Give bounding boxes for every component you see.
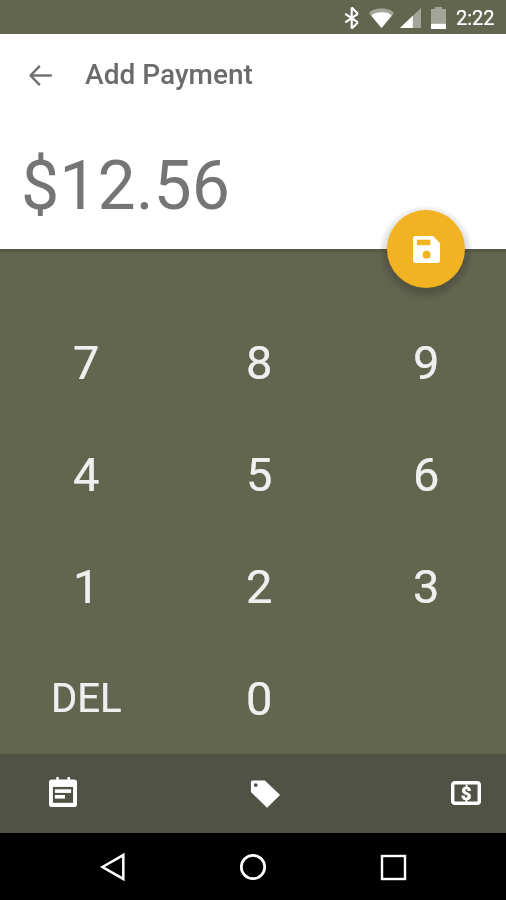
staticText: 9 [413, 335, 440, 390]
staticText: Add Payment [85, 58, 253, 91]
staticText: 8 [246, 335, 273, 390]
button[interactable]: 5 [172, 418, 346, 530]
staticText: 3 [413, 559, 440, 614]
staticText: $ [461, 783, 472, 804]
button[interactable]: 4 [0, 418, 172, 530]
button[interactable]: 3 [346, 530, 506, 642]
staticText: 2 [246, 559, 273, 614]
button[interactable]: Back [16, 51, 64, 99]
staticText: 5 [246, 447, 273, 502]
button[interactable]: 9 [346, 306, 506, 418]
button[interactable]: Home [225, 839, 281, 895]
staticText: 0 [246, 671, 273, 726]
button[interactable]: Events [35, 766, 91, 822]
staticText: 2:22 [456, 6, 495, 29]
button[interactable]: Recents [365, 839, 421, 895]
button[interactable]: DEL [0, 642, 172, 754]
staticText: 6 [413, 447, 440, 502]
staticText: DEL [51, 675, 122, 722]
button[interactable]: Back [85, 839, 141, 895]
button[interactable]: Payments [438, 766, 494, 822]
staticText: 1 [73, 559, 100, 614]
staticText: 4 [73, 447, 100, 502]
staticText: $12.56 [21, 146, 231, 226]
button[interactable]: 0 [172, 642, 346, 754]
button[interactable]: 7 [0, 306, 172, 418]
staticText: 7 [73, 335, 100, 390]
button[interactable]: 6 [346, 418, 506, 530]
button[interactable]: Save [387, 210, 465, 288]
button[interactable]: Tags [237, 766, 293, 822]
button[interactable]: 1 [0, 530, 172, 642]
button[interactable]: 2 [172, 530, 346, 642]
button[interactable]: 8 [172, 306, 346, 418]
